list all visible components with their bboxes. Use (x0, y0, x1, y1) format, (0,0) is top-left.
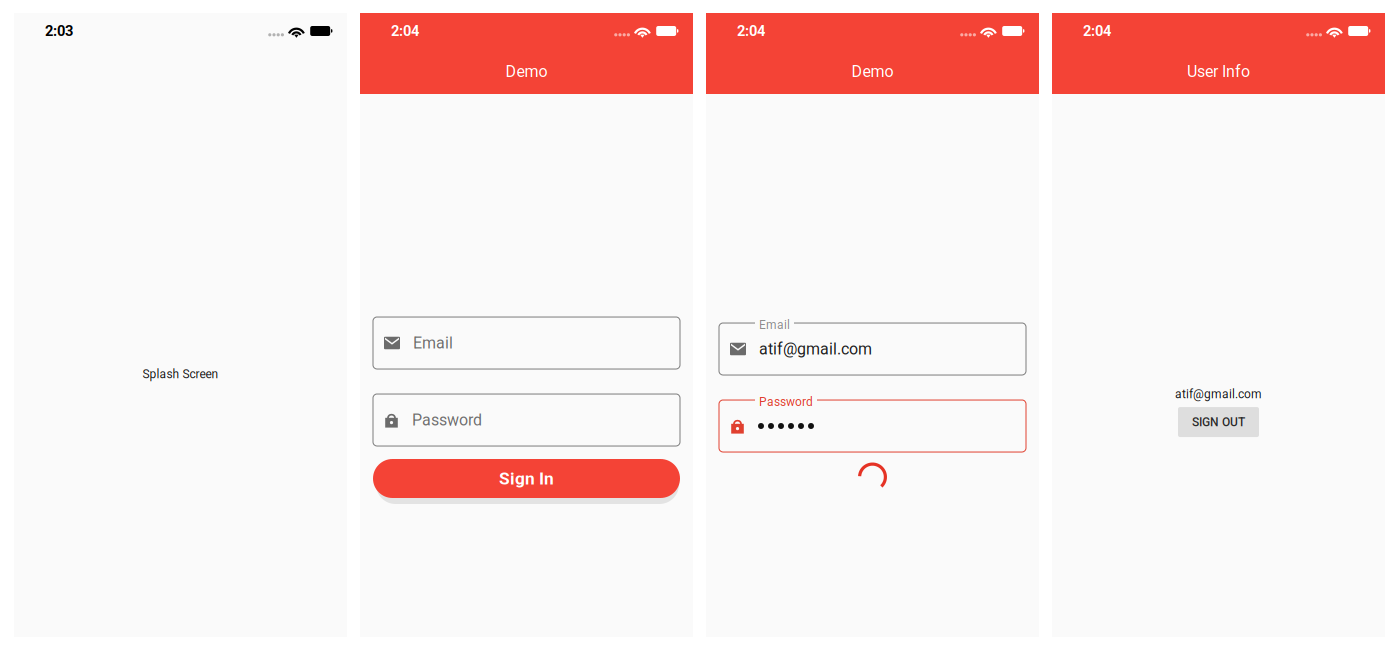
staticText: Email (413, 334, 453, 352)
staticText: 2:04 (391, 22, 419, 40)
staticText: Demo (505, 62, 547, 81)
staticText: 2:03 (45, 22, 73, 40)
staticText: Demo (851, 62, 893, 81)
button[interactable]: SIGN OUT (1178, 407, 1259, 437)
staticText: SIGN OUT (1192, 415, 1245, 429)
staticText: 2:04 (1083, 22, 1111, 40)
staticText: Password (412, 411, 482, 429)
staticText: Sign In (499, 468, 554, 489)
staticText: Email (759, 318, 790, 332)
staticText: 2:04 (737, 22, 765, 40)
staticText: atif@gmail.com (1175, 387, 1262, 401)
staticText: Password (759, 395, 813, 409)
staticText: User Info (1187, 62, 1250, 81)
staticText: Splash Screen (142, 367, 218, 381)
staticText: atif@gmail.com (759, 340, 872, 358)
button[interactable]: Sign In (373, 459, 680, 504)
